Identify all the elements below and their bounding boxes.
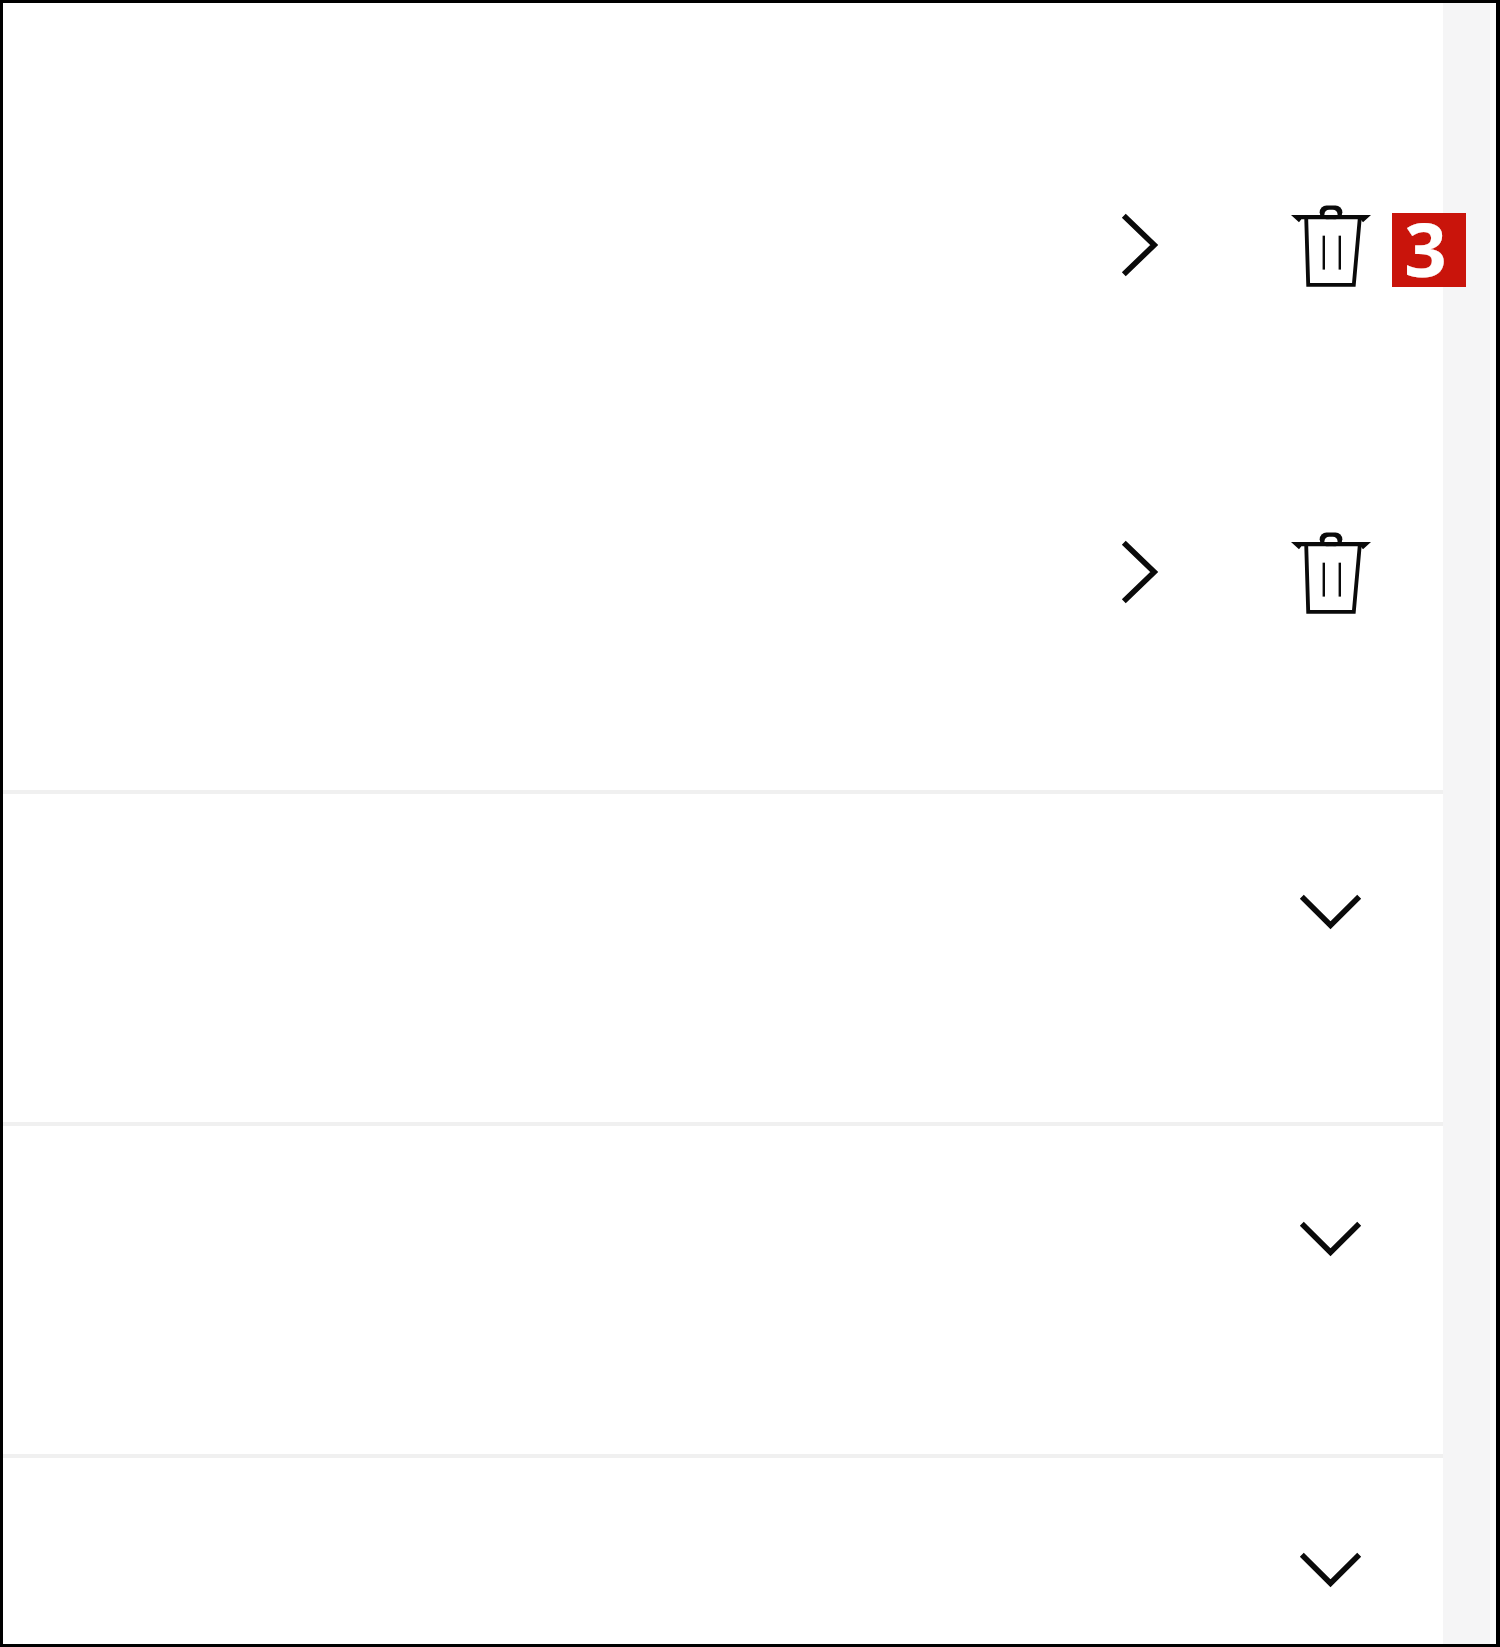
button[interactable]: Delete: [1275, 514, 1387, 626]
button[interactable]: Expand: [3, 794, 1443, 1122]
button[interactable]: Open: [3, 3, 1443, 330]
button[interactable]: Delete: [1275, 187, 1387, 299]
button[interactable]: Expand: [1282, 863, 1378, 959]
button[interactable]: [1392, 213, 1466, 287]
button[interactable]: Expand: [1282, 1190, 1378, 1286]
staticText: 3: [1404, 198, 1447, 299]
button[interactable]: Expand: [3, 1126, 1443, 1454]
button[interactable]: Expand: [1282, 1521, 1378, 1617]
button[interactable]: Open: [3, 330, 1443, 790]
button[interactable]: Expand: [3, 1458, 1443, 1643]
button[interactable]: Open: [1103, 524, 1175, 620]
button[interactable]: Open: [1103, 197, 1175, 293]
